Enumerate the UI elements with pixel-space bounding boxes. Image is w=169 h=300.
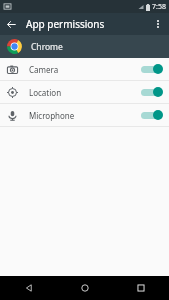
staticText: Microphone	[29, 110, 139, 121]
button[interactable]: Camera	[0, 58, 169, 80]
staticText: Camera	[29, 64, 139, 75]
staticText: Chrome	[31, 41, 63, 53]
button[interactable]: Back	[0, 276, 57, 300]
button[interactable]: Home	[57, 276, 113, 300]
button[interactable]: More options	[147, 13, 169, 35]
button[interactable]: Location	[0, 81, 169, 103]
button[interactable]: Toggle permission	[139, 108, 163, 122]
button[interactable]: Recent apps	[113, 276, 169, 300]
staticText: Location	[29, 87, 139, 98]
button[interactable]: Toggle permission	[139, 62, 163, 76]
button[interactable]: Microphone	[0, 104, 169, 126]
button[interactable]: Toggle permission	[139, 85, 163, 99]
button[interactable]: Chrome	[0, 35, 169, 58]
button[interactable]: Back	[0, 13, 22, 35]
staticText: App permissions	[26, 17, 105, 31]
staticText: 7:58	[152, 2, 166, 12]
